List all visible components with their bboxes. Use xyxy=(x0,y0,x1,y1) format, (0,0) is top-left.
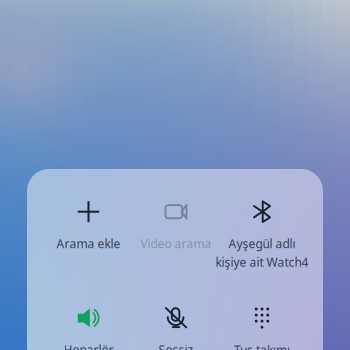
staticText: Ayşegül adlı xyxy=(228,236,295,251)
staticText: Tuş takımı xyxy=(234,342,290,350)
staticText: Hoparlör xyxy=(63,342,113,350)
button[interactable]: Video arama xyxy=(132,199,219,261)
button[interactable]: Hoparlör xyxy=(45,305,132,350)
staticText: kişiye ait Watch4 xyxy=(215,254,308,270)
button[interactable]: Tuş takımı xyxy=(218,305,305,350)
staticText: Video arama xyxy=(140,236,211,251)
staticText: Arama ekle xyxy=(56,236,120,251)
button[interactable]: Arama ekle xyxy=(45,199,132,261)
button[interactable]: Bluetooth cihazı xyxy=(218,199,305,261)
staticText: Sessiz xyxy=(158,342,193,350)
button[interactable]: Sessiz xyxy=(132,305,219,350)
